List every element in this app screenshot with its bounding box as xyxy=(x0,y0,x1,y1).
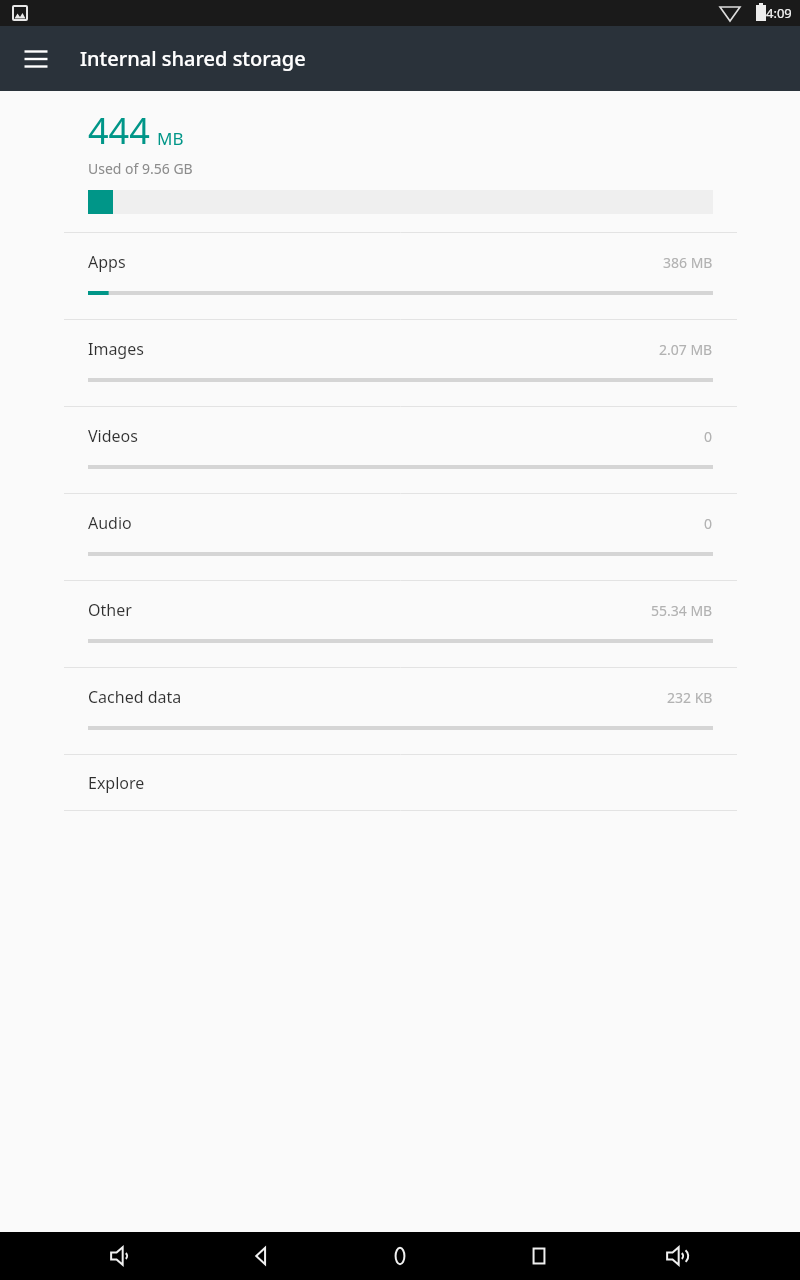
staticText: 386 MB xyxy=(663,253,713,272)
staticText: 55.34 MB xyxy=(651,601,713,620)
button[interactable]: Home xyxy=(376,1232,424,1280)
staticText: MB xyxy=(157,127,184,150)
staticText: Cached data xyxy=(88,686,182,708)
button[interactable]: Open navigation menu xyxy=(14,37,58,81)
button[interactable]: Images xyxy=(0,320,800,406)
staticText: Apps xyxy=(88,251,126,273)
staticText: 0 xyxy=(704,427,713,446)
button[interactable]: Cached data xyxy=(0,668,800,754)
button[interactable]: Volume up xyxy=(654,1232,702,1280)
staticText: Other xyxy=(88,599,132,621)
staticText: Audio xyxy=(88,512,132,534)
button[interactable]: Back xyxy=(237,1232,285,1280)
button[interactable]: Apps xyxy=(0,233,800,319)
button[interactable]: Explore xyxy=(0,755,800,810)
staticText: Videos xyxy=(88,425,138,447)
button[interactable]: Recent apps xyxy=(515,1232,563,1280)
button[interactable]: Audio xyxy=(0,494,800,580)
staticText: Explore xyxy=(88,772,145,794)
staticText: Used of 9.56 GB xyxy=(88,159,193,178)
staticText: Images xyxy=(88,338,144,360)
staticText: 444 xyxy=(88,106,150,155)
staticText: 4:09 xyxy=(766,4,792,22)
button[interactable]: Videos xyxy=(0,407,800,493)
staticText: 0 xyxy=(704,514,713,533)
staticText: 232 KB xyxy=(667,688,713,707)
staticText: 2.07 MB xyxy=(659,340,713,359)
button[interactable]: Volume down xyxy=(98,1232,146,1280)
staticText: Internal shared storage xyxy=(80,45,306,72)
button[interactable]: Other xyxy=(0,581,800,667)
